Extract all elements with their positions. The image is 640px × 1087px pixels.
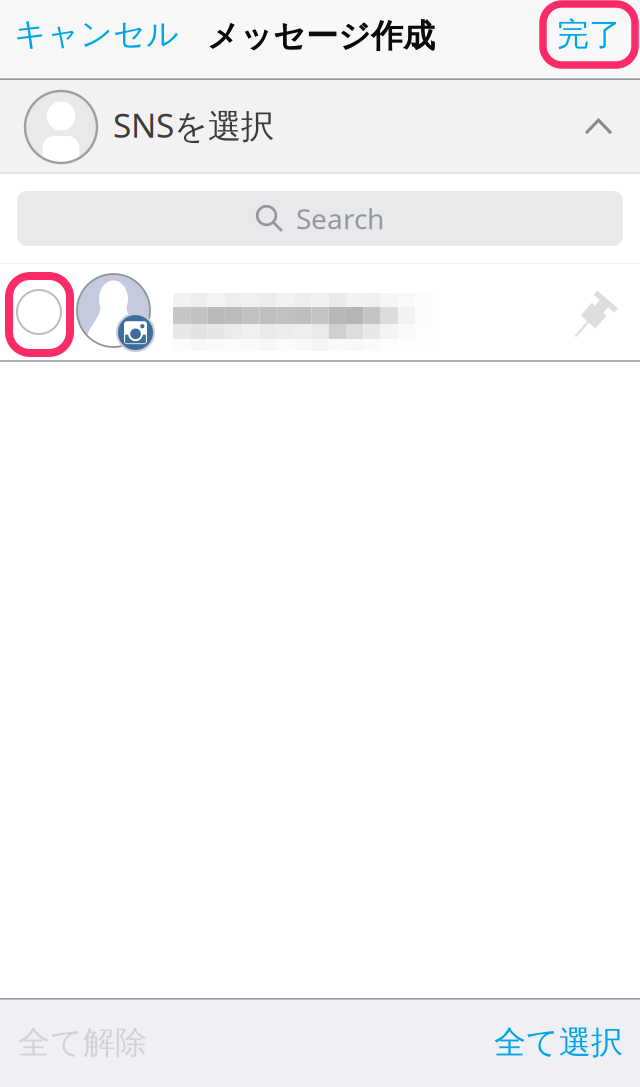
staticText: 全て選択 xyxy=(494,1023,623,1062)
button[interactable]: 全て解除 xyxy=(0,1007,147,1078)
button[interactable]: 完了 xyxy=(543,4,635,65)
button[interactable]: 連絡先を選択 xyxy=(0,263,640,362)
staticText: 全て解除 xyxy=(18,1023,147,1062)
staticText: キャンセル xyxy=(14,14,179,54)
button[interactable]: Search xyxy=(17,191,623,246)
button[interactable]: メッセージ作成 xyxy=(201,6,441,66)
button[interactable]: 選択 xyxy=(0,263,80,362)
staticText: Search xyxy=(296,200,384,237)
staticText: 完了 xyxy=(557,15,621,54)
staticText: メッセージ作成 xyxy=(207,16,435,56)
button[interactable]: 全て選択 xyxy=(494,1007,640,1078)
button[interactable]: SNSを選択 xyxy=(0,80,640,174)
button[interactable]: キャンセル xyxy=(0,4,189,64)
button[interactable]: ピン留め xyxy=(561,269,629,368)
staticText: SNSを選択 xyxy=(113,103,274,147)
